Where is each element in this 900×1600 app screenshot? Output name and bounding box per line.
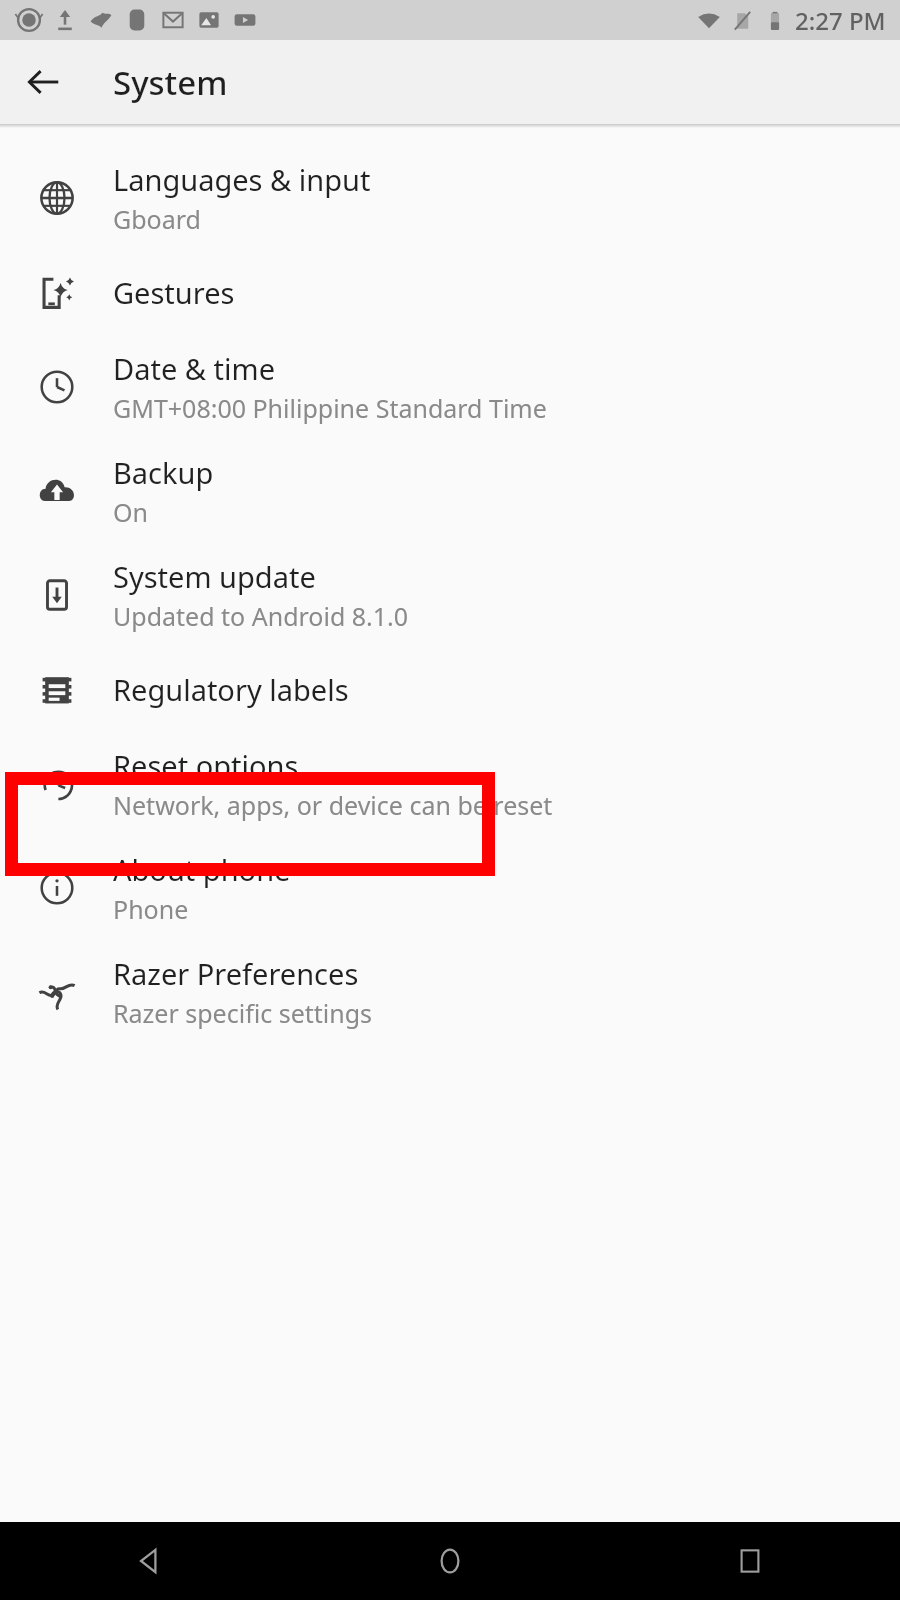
- button[interactable]: Home: [300, 1522, 600, 1600]
- staticText: GMT+08:00 Philippine Standard Time: [113, 391, 547, 425]
- staticText: Phone: [113, 892, 189, 926]
- staticText: Reset options: [113, 746, 299, 785]
- staticText: Network, apps, or device can be reset: [113, 788, 553, 822]
- staticText: Gestures: [113, 273, 235, 312]
- staticText: Regulatory labels: [113, 670, 349, 709]
- staticText: 2:27 PM: [795, 4, 886, 37]
- staticText: Backup: [113, 453, 214, 492]
- staticText: About phone: [113, 850, 291, 889]
- button[interactable]: Backup: [0, 439, 900, 543]
- staticText: Razer specific settings: [113, 996, 373, 1030]
- button[interactable]: Date & time: [0, 335, 900, 439]
- staticText: System: [113, 60, 228, 105]
- button[interactable]: Back: [14, 52, 74, 112]
- button[interactable]: Languages & input: [0, 146, 900, 250]
- button[interactable]: Razer Preferences: [0, 940, 900, 1044]
- staticText: On: [113, 495, 148, 529]
- button[interactable]: Reset options: [0, 732, 900, 836]
- staticText: Languages & input: [113, 160, 371, 199]
- staticText: Razer Preferences: [113, 954, 359, 993]
- staticText: Date & time: [113, 349, 275, 388]
- staticText: Gboard: [113, 202, 201, 236]
- button[interactable]: System update: [0, 543, 900, 647]
- staticText: System update: [113, 557, 316, 596]
- button[interactable]: Recent apps: [600, 1522, 900, 1600]
- button[interactable]: Regulatory labels: [0, 647, 900, 732]
- button[interactable]: Back: [0, 1522, 300, 1600]
- staticText: Updated to Android 8.1.0: [113, 599, 409, 633]
- button[interactable]: About phone: [0, 836, 900, 940]
- button[interactable]: Gestures: [0, 250, 900, 335]
